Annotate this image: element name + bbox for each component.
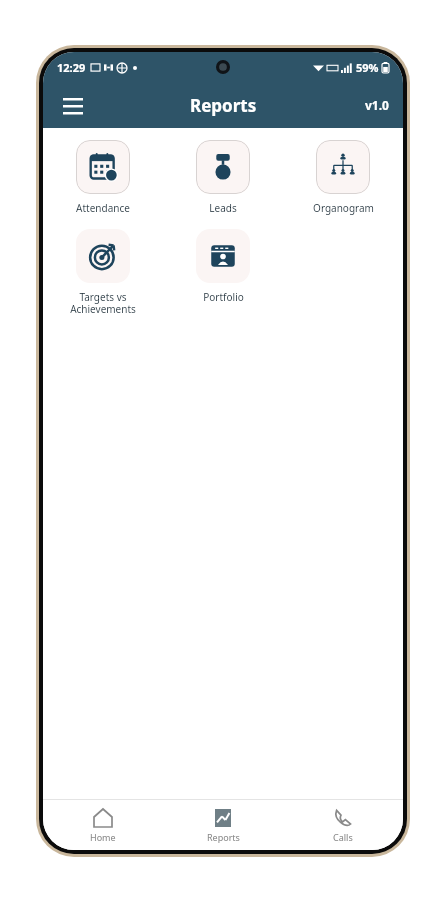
button[interactable]: Reports bbox=[163, 800, 283, 850]
button[interactable]: Attendance bbox=[43, 140, 163, 215]
staticText: 12:29 bbox=[57, 60, 86, 75]
staticText: Calls bbox=[333, 831, 353, 843]
staticText: Organogram bbox=[313, 201, 374, 215]
button[interactable]: Home bbox=[43, 800, 163, 850]
staticText: Leads bbox=[209, 201, 237, 215]
button[interactable]: Calls bbox=[283, 800, 403, 850]
staticText: Targets vs Achievements bbox=[70, 290, 136, 316]
button[interactable]: Targets vs Achievements bbox=[43, 229, 163, 316]
button[interactable]: Leads bbox=[163, 140, 283, 215]
staticText: Reports bbox=[207, 831, 240, 843]
staticText: v1.0 bbox=[365, 97, 389, 113]
staticText: Home bbox=[90, 831, 116, 843]
button[interactable]: Portfolio bbox=[163, 229, 283, 304]
staticText: Attendance bbox=[76, 201, 130, 215]
staticText: Portfolio bbox=[203, 290, 244, 304]
staticText: 59% bbox=[356, 60, 379, 75]
button[interactable]: Organogram bbox=[283, 140, 403, 215]
button[interactable]: Open navigation menu bbox=[51, 83, 95, 127]
staticText: Reports bbox=[190, 94, 257, 117]
